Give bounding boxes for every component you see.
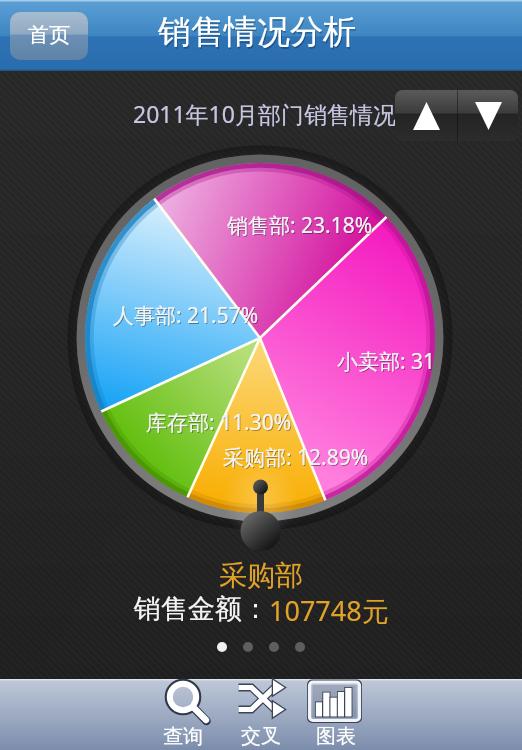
staticText: 人事部: 21.57% [113,301,259,330]
staticText: 107748元 [269,592,389,629]
button[interactable]: 图表 [300,680,372,750]
staticText: 小卖部: 31.06% [338,348,435,377]
staticText: 采购部: 12.89% [224,444,370,473]
button[interactable]: 首页 [10,12,88,60]
button[interactable]: 交叉 [225,680,297,750]
staticText: 销售情况分析 [158,11,356,53]
staticText: 销售情况分析 [159,13,357,55]
staticText: 销售部: 23.18% [228,212,374,241]
staticText: 销售金额： [134,592,269,626]
button[interactable]: Next month [458,90,518,141]
staticText: 库存部: 11.30% [146,408,292,437]
staticText: 图表 [316,724,356,749]
staticText: 查询 [163,724,203,749]
staticText: 交叉 [241,724,281,749]
button[interactable]: 查询 [147,680,219,750]
staticText: 首页 [28,22,70,48]
staticText: 采购部: 12.89% [223,443,369,472]
staticText: 小卖部: 31.06% [337,347,435,376]
staticText: 采购部 [219,558,303,593]
button[interactable]: Previous month [395,90,457,141]
staticText: 2011年10月部门销售情况 [133,98,396,129]
staticText: 销售部: 23.18% [227,211,373,240]
staticText: 库存部: 11.30% [147,409,293,438]
staticText: 人事部: 21.57% [114,302,260,331]
